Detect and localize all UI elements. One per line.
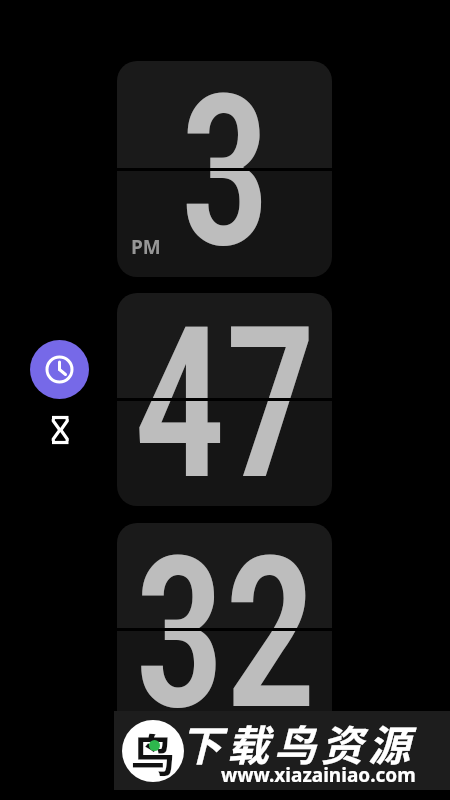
button[interactable]: 32 — [117, 523, 332, 736]
staticText: PM — [131, 234, 161, 260]
staticText: 3 — [179, 61, 270, 265]
button[interactable]: 3 — [117, 61, 332, 277]
staticText: www.xiazainiao.com — [221, 762, 416, 788]
button[interactable] — [44, 413, 76, 445]
staticText: 47 — [134, 293, 315, 494]
staticText: 鸟 — [131, 721, 175, 782]
staticText: 32 — [134, 523, 315, 724]
button[interactable]: 47 — [117, 293, 332, 506]
staticText: 下载鸟资源 — [180, 712, 416, 773]
button[interactable]: 鸟 — [114, 711, 450, 790]
button[interactable] — [30, 340, 89, 399]
